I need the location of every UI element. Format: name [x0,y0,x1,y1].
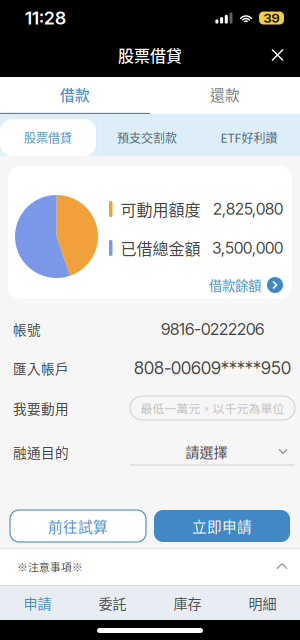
staticText: 我要動用 [13,398,69,418]
staticText: 借款餘額 [209,275,261,295]
staticText: 股票借貸 [24,129,72,146]
staticText: 委託 [98,593,126,613]
staticText: 808-00609*****950 [134,357,291,378]
staticText: 股票借貸 [118,43,182,67]
button[interactable]: ETF好利讚 [198,119,300,156]
button[interactable]: 預支交割款 [96,119,198,156]
staticText: ETF好利讚 [220,129,277,146]
button[interactable]: 前往試算 [10,510,146,542]
staticText: 可動用額度 [120,197,200,221]
staticText: 39 [263,10,279,26]
staticText: 帳號 [13,319,41,339]
staticText: 已借總金額 [120,236,200,260]
button[interactable]: 最低一萬元，以千元為單位 [130,396,295,420]
button[interactable]: 借款 [0,77,150,114]
staticText: 最低一萬元，以千元為單位 [140,399,284,417]
staticText: 9816-0222206 [161,319,264,339]
button[interactable]: 委託 [75,588,150,618]
staticText: 明細 [248,593,276,613]
button[interactable]: ※注意事項※ [0,548,300,585]
staticText: 請選擇 [185,441,227,462]
staticText: 11:28 [25,7,66,29]
staticText: 還款 [210,84,240,105]
staticText: 匯入帳戶 [13,358,69,378]
staticText: ※注意事項※ [17,559,83,574]
staticText: 3,500,000 [212,238,283,258]
button[interactable]: 明細 [225,588,300,618]
button[interactable]: 還款 [150,77,300,114]
button[interactable]: 立即申請 [154,510,290,542]
staticText: 前往試算 [48,515,108,537]
button[interactable]: Close [259,36,296,73]
button[interactable]: 庫存 [150,588,225,618]
staticText: 立即申請 [192,515,252,537]
staticText: 預支交割款 [117,129,177,146]
button[interactable]: 借款餘額 [109,275,283,295]
staticText: 申請 [23,593,51,613]
staticText: 借款 [60,84,90,105]
staticText: 2,825,080 [213,199,283,219]
button[interactable]: 股票借貸 [0,119,96,156]
button[interactable]: 申請 [0,588,75,618]
staticText: 庫存 [173,593,201,613]
button[interactable]: 請選擇 [130,438,295,465]
staticText: 融通目的 [13,442,69,462]
